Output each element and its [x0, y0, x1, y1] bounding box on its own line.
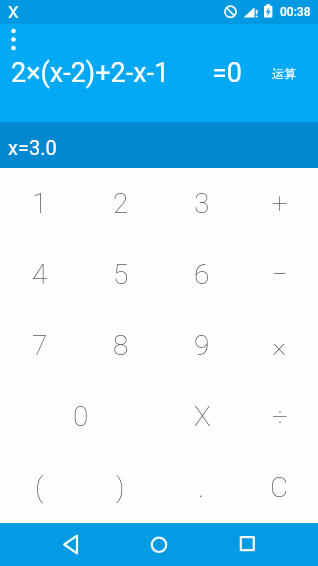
button[interactable]: X	[162, 381, 243, 452]
button[interactable]: 4	[0, 239, 80, 310]
staticText: 8	[113, 329, 129, 362]
button[interactable]	[212, 523, 318, 566]
staticText: 5	[113, 258, 129, 291]
staticText: =0	[212, 57, 242, 89]
staticText: X	[8, 2, 19, 22]
button[interactable]: 1	[0, 168, 80, 239]
button[interactable]: 5	[80, 239, 161, 310]
button[interactable]	[0, 523, 106, 566]
staticText: +	[272, 187, 288, 220]
staticText: 3	[194, 187, 210, 220]
button[interactable]: (	[0, 452, 80, 523]
staticText: .	[198, 471, 205, 504]
button[interactable]: 0	[0, 381, 162, 452]
staticText: 00:38	[280, 5, 311, 19]
button[interactable]: 8	[80, 310, 161, 381]
button[interactable]: C	[242, 452, 317, 523]
staticText: ×	[272, 329, 287, 362]
button[interactable]: −	[242, 239, 317, 310]
staticText: 1	[32, 187, 48, 220]
button[interactable]: +	[242, 168, 317, 239]
staticText: 9	[194, 329, 210, 362]
staticText: 2	[113, 187, 129, 220]
staticText: X	[194, 400, 211, 433]
staticText: −	[272, 258, 288, 291]
button[interactable]: 6	[161, 239, 242, 310]
staticText: C	[270, 471, 289, 504]
button[interactable]: ÷	[243, 381, 317, 452]
button[interactable]: 3	[161, 168, 242, 239]
staticText: 运算	[272, 66, 296, 81]
button[interactable]: ×	[242, 310, 317, 381]
staticText: 2×(x-2)+2-x-1	[11, 57, 170, 89]
staticText: 6	[194, 258, 210, 291]
button[interactable]: )	[80, 452, 161, 523]
staticText: x=3.0	[8, 136, 57, 159]
staticText: (	[35, 471, 44, 504]
button[interactable]	[106, 523, 212, 566]
staticText: ÷	[272, 400, 288, 433]
button[interactable]: 9	[161, 310, 242, 381]
button[interactable]: 2	[80, 168, 161, 239]
staticText: 0	[73, 400, 89, 433]
button[interactable]	[0, 24, 26, 54]
staticText: 4	[32, 258, 48, 291]
button[interactable]: 运算	[272, 66, 296, 81]
staticText: )	[116, 471, 125, 504]
staticText: 7	[32, 329, 48, 362]
button[interactable]: 7	[0, 310, 80, 381]
